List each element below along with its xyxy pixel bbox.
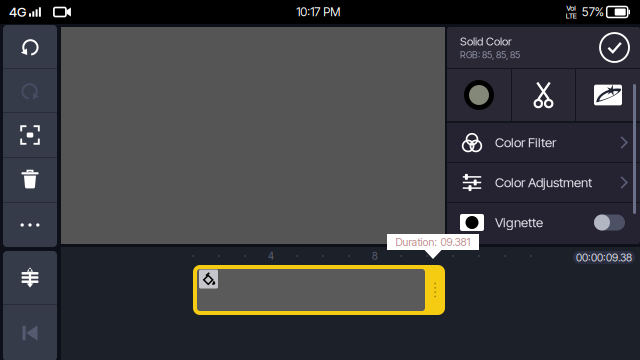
button[interactable]: Confirm [600,33,629,62]
button[interactable]: Expand timeline [3,251,57,304]
button[interactable]: Color Adjustment [447,163,640,202]
staticText: 4G [9,4,26,20]
button[interactable]: Delete [3,158,57,202]
staticText: Vignette [495,214,543,230]
button[interactable]: Effects [576,69,640,121]
button[interactable]: Undo [3,25,57,68]
staticText: Color Filter [495,134,556,150]
button[interactable]: Vignette [447,203,640,242]
button[interactable]: Go to start [3,305,57,360]
button[interactable]: Fit to screen [3,113,57,157]
staticText: 10:17 PM [296,5,340,19]
button[interactable]: Solid colour clip [193,265,445,315]
button[interactable]: More options [3,203,57,247]
staticText: Duration: 09.381 [395,235,470,248]
staticText: LTE [566,11,577,20]
button[interactable]: Color Filter [447,123,640,162]
button[interactable]: Color [447,69,511,121]
staticText: 57% [582,5,604,19]
staticText: 4 [268,250,274,262]
staticText: Vol [566,4,576,12]
button[interactable]: Trim or split [512,69,575,121]
button[interactable]: Redo [3,69,57,112]
staticText: 00:00:09.38 [576,251,632,264]
staticText: Color Adjustment [495,174,592,190]
staticText: 8 [372,250,378,262]
staticText: Solid Color [460,34,512,48]
staticText: RGB: 85, 85, 85 [460,49,520,60]
